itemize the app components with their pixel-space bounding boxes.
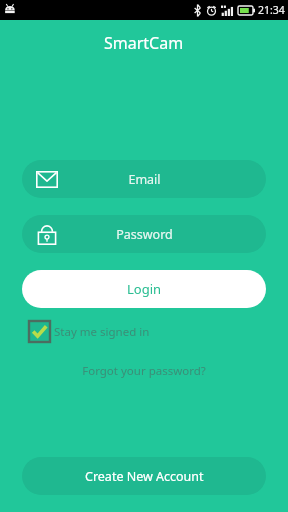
staticText: Password (116, 226, 173, 243)
button[interactable]: Login (22, 270, 266, 308)
button[interactable]: Stay me signed in (29, 321, 150, 342)
staticText: Login (127, 280, 162, 298)
button[interactable]: Create New Account (22, 457, 266, 495)
staticText: Stay me signed in (54, 324, 150, 340)
button[interactable]: Password input (22, 215, 266, 253)
staticText: SmartCam (104, 32, 184, 54)
button[interactable]: Email input (22, 160, 266, 198)
staticText: Email (128, 171, 161, 188)
staticText: 21:34 (258, 3, 285, 17)
button[interactable]: Forgot your password? (76, 357, 212, 385)
staticText: Create New Account (85, 468, 204, 485)
